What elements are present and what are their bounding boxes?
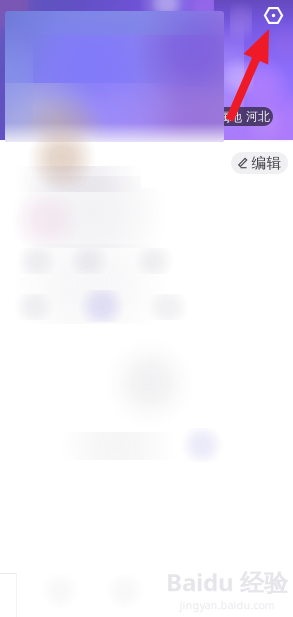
staticText: 河北 (246, 109, 270, 124)
staticText: Baidu 经验 (166, 566, 288, 598)
staticText: jingyan.baidu.com (179, 598, 274, 612)
button[interactable]: Settings (263, 5, 284, 26)
staticText: IP属地 (207, 108, 242, 124)
button[interactable]: 编辑 (231, 152, 288, 174)
staticText: 编辑 (251, 154, 281, 172)
